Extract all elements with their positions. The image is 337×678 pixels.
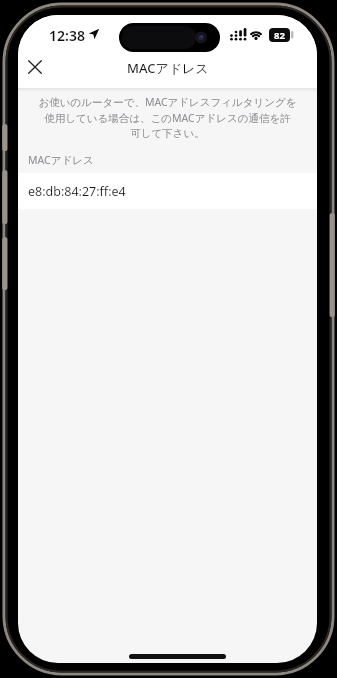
staticText: e8:db:84:27:ff:e4 — [28, 183, 126, 200]
staticText: 12:38 — [49, 26, 85, 42]
staticText: お使いのルーターで、MACアドレスフィルタリングを 使用している場合は、このMA… — [38, 95, 297, 140]
button[interactable] — [20, 52, 50, 82]
staticText: MACアドレス — [127, 59, 209, 75]
staticText: MACアドレス — [28, 153, 94, 167]
button[interactable]: e8:db:84:27:ff:e4 — [18, 173, 317, 209]
staticText: 82 — [274, 29, 285, 42]
